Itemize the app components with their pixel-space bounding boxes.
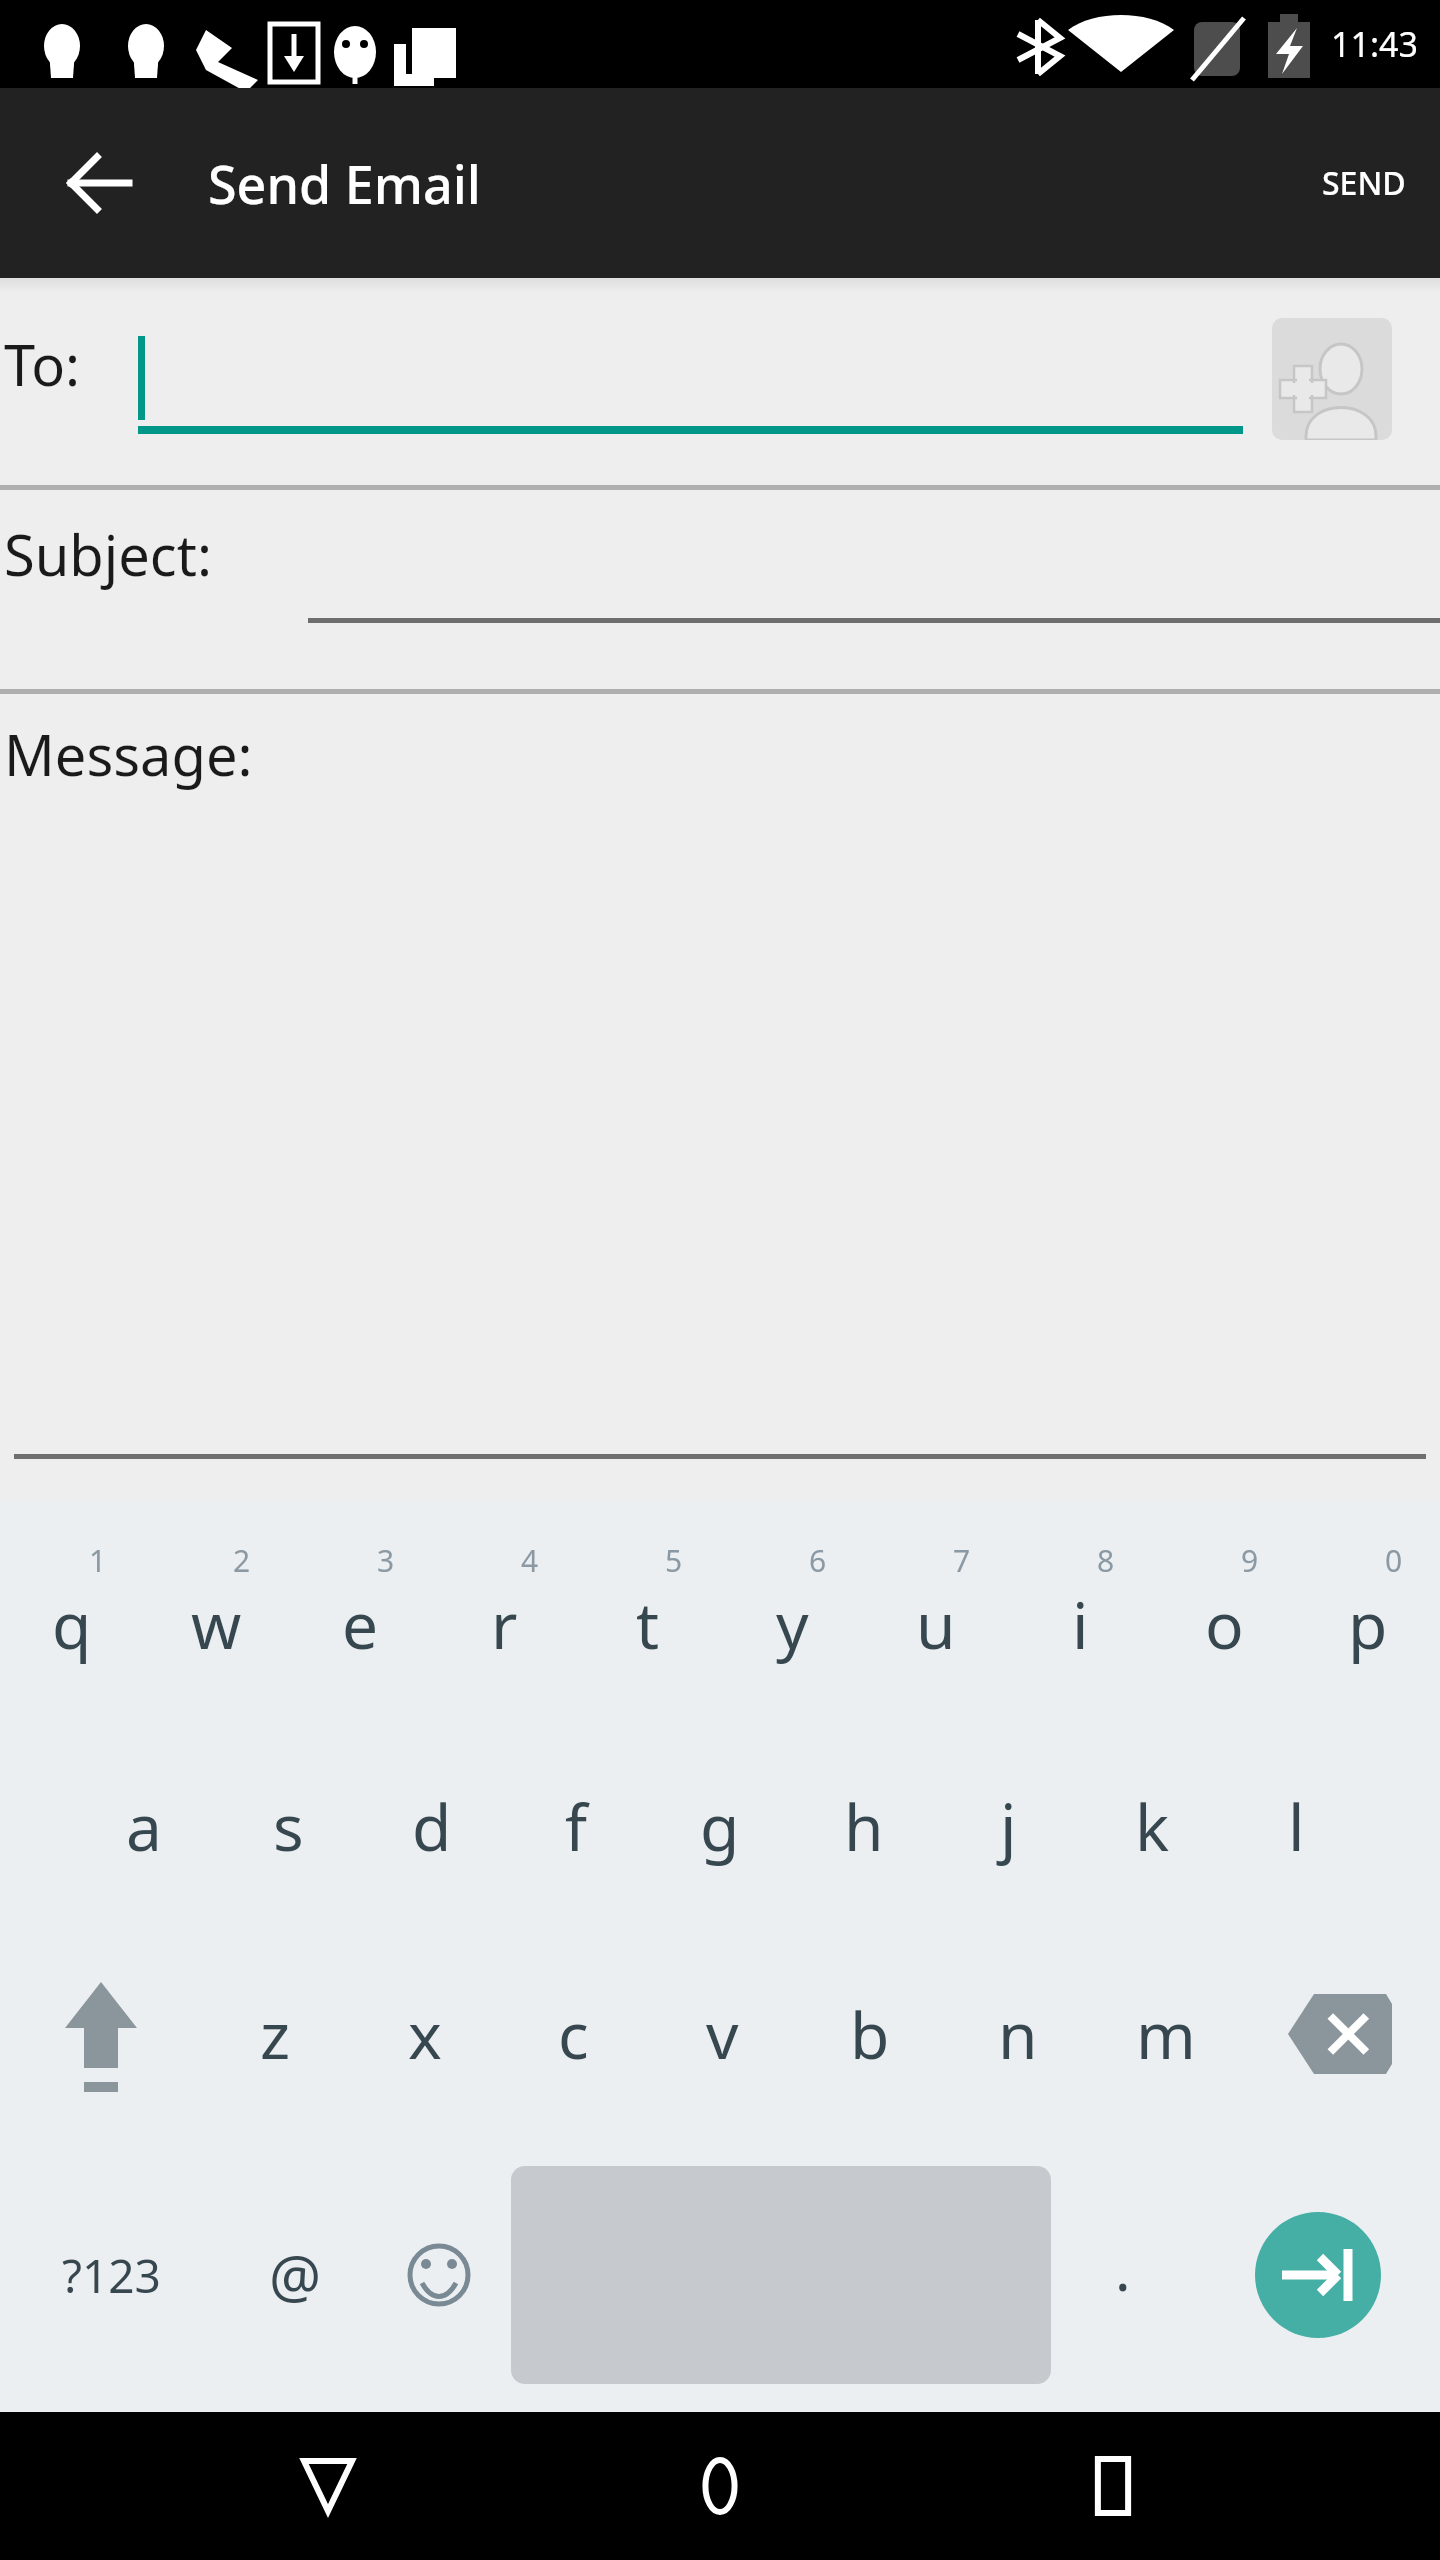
staticText: 3 — [377, 1540, 395, 1581]
staticText: @ — [269, 2236, 322, 2315]
button[interactable]: 7 — [864, 1500, 1008, 1722]
staticText: Send Email — [208, 148, 481, 219]
staticText: k — [1135, 1783, 1170, 1870]
button[interactable]: 0 — [1296, 1500, 1440, 1722]
staticText: y — [776, 1581, 809, 1668]
button[interactable]: Home — [655, 2421, 785, 2551]
button[interactable]: a — [72, 1722, 216, 1930]
button[interactable]: ?123 — [0, 2138, 223, 2412]
staticText: u — [916, 1581, 956, 1668]
button[interactable]: 8 — [1008, 1500, 1152, 1722]
button[interactable]: z — [201, 1930, 350, 2138]
button[interactable]: x — [350, 1930, 499, 2138]
staticText: s — [273, 1783, 304, 1870]
staticText: Subject: — [4, 516, 212, 592]
staticText: v — [706, 1991, 739, 2078]
staticText: 1 — [89, 1540, 107, 1581]
button[interactable]: h — [792, 1722, 936, 1930]
staticText: h — [844, 1783, 884, 1870]
staticText: i — [1072, 1581, 1089, 1668]
button[interactable]: g — [648, 1722, 792, 1930]
staticText: 2 — [233, 1540, 251, 1581]
staticText: Message: — [4, 716, 253, 792]
staticText: z — [260, 1991, 291, 2078]
staticText: d — [412, 1783, 452, 1870]
staticText: o — [1205, 1581, 1244, 1668]
button[interactable]: d — [360, 1722, 504, 1930]
staticText: x — [408, 1991, 442, 2078]
button[interactable]: Navigate up — [56, 139, 144, 227]
button[interactable]: c — [499, 1930, 648, 2138]
staticText: SEND — [1322, 161, 1406, 205]
button[interactable]: @ — [223, 2138, 367, 2412]
staticText: j — [1000, 1783, 1017, 1870]
button[interactable]: v — [648, 1930, 796, 2138]
button[interactable]: f — [504, 1722, 648, 1930]
staticText: 0 — [1385, 1540, 1403, 1581]
staticText: g — [700, 1783, 740, 1870]
staticText: 7 — [953, 1540, 971, 1581]
button[interactable]: j — [936, 1722, 1080, 1930]
staticText: To: — [4, 326, 81, 402]
button[interactable]: 3 — [288, 1500, 432, 1722]
staticText: w — [191, 1581, 242, 1668]
button[interactable]: Message: — [0, 694, 1440, 1480]
button[interactable]: Shift — [0, 1930, 201, 2138]
staticText: 5 — [665, 1540, 683, 1581]
button[interactable]: 2 — [144, 1500, 288, 1722]
staticText: l — [1288, 1783, 1305, 1870]
button[interactable]: Backspace — [1240, 1930, 1440, 2138]
button[interactable]: b — [796, 1930, 944, 2138]
button[interactable]: 6 — [720, 1500, 864, 1722]
button[interactable]: 5 — [576, 1500, 720, 1722]
staticText: t — [636, 1581, 660, 1668]
staticText: r — [491, 1581, 518, 1668]
button[interactable]: s — [216, 1722, 360, 1930]
staticText: n — [998, 1991, 1038, 2078]
staticText: m — [1136, 1991, 1196, 2078]
staticText: 4 — [521, 1540, 539, 1581]
staticText: q — [52, 1581, 92, 1668]
button[interactable]: Recents — [1048, 2421, 1178, 2551]
button[interactable]: Enter — [1195, 2138, 1440, 2412]
staticText: 6 — [809, 1540, 827, 1581]
button[interactable]: 4 — [432, 1500, 576, 1722]
button[interactable]: n — [944, 1930, 1092, 2138]
button[interactable]: m — [1092, 1930, 1240, 2138]
staticText: 11:43 — [1331, 21, 1418, 67]
staticText: 9 — [1241, 1540, 1259, 1581]
button[interactable]: 9 — [1152, 1500, 1296, 1722]
staticText: ?123 — [62, 2244, 161, 2307]
staticText: c — [558, 1991, 589, 2078]
button[interactable]: . — [1051, 2138, 1195, 2412]
button[interactable]: 1 — [0, 1500, 144, 1722]
staticText: 8 — [1097, 1540, 1115, 1581]
button[interactable]: k — [1080, 1722, 1224, 1930]
staticText: f — [565, 1783, 588, 1870]
staticText: . — [1115, 2229, 1131, 2308]
button[interactable]: l — [1224, 1722, 1368, 1930]
button[interactable]: SEND — [1288, 127, 1440, 239]
button[interactable]: Pick contact — [1272, 318, 1392, 440]
button[interactable]: Back — [263, 2421, 393, 2551]
staticText: e — [342, 1581, 379, 1668]
staticText: b — [850, 1991, 890, 2078]
staticText: p — [1348, 1581, 1388, 1668]
button[interactable]: Emoji — [367, 2138, 511, 2412]
staticText: a — [126, 1783, 162, 1870]
